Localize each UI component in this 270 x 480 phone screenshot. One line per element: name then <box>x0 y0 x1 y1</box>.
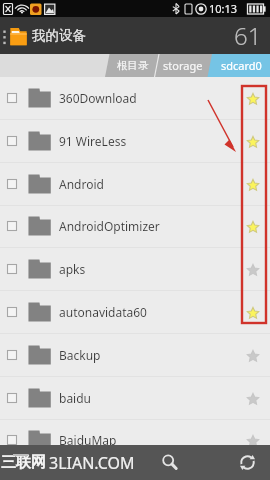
button[interactable]: Favorite <box>238 378 268 419</box>
staticText: 61 <box>234 19 262 52</box>
staticText: 我的设备 <box>32 27 86 44</box>
button[interactable]: Search <box>148 445 192 480</box>
button[interactable]: 91 WireLess <box>0 120 270 162</box>
staticText: Android <box>59 176 104 192</box>
staticText: apks <box>59 261 86 277</box>
button[interactable]: AndroidOptimizer <box>0 205 270 247</box>
staticText: AndroidOptimizer <box>59 218 160 234</box>
button[interactable]: storage <box>160 54 205 77</box>
button[interactable]: BaiduMap <box>0 419 270 445</box>
button[interactable]: apks <box>0 248 270 290</box>
button[interactable]: autonavidata60 <box>0 291 270 333</box>
staticText: 根目录 <box>117 59 149 72</box>
button[interactable]: Favorite <box>238 78 268 119</box>
button[interactable]: sdcard0 <box>212 54 270 77</box>
staticText: Backup <box>59 347 101 363</box>
button[interactable]: Favorite <box>238 292 268 333</box>
staticText: baidu <box>59 390 92 406</box>
button[interactable]: Backup <box>0 334 270 376</box>
staticText: autonavidata60 <box>59 304 147 320</box>
staticText: 91 WireLess <box>59 133 127 149</box>
staticText: sdcard0 <box>221 58 262 73</box>
button[interactable]: 360Download <box>0 77 270 119</box>
button[interactable]: More options <box>0 17 10 54</box>
staticText: 3LIAN.COM <box>49 452 135 474</box>
staticText: 360Download <box>59 90 137 106</box>
button[interactable]: Favorite <box>238 164 268 205</box>
button[interactable]: Android <box>0 163 270 205</box>
staticText: 三联网 <box>1 453 46 472</box>
button[interactable]: Favorite <box>238 249 268 290</box>
button[interactable]: 根目录 <box>114 54 152 77</box>
staticText: 10:13 <box>209 1 238 16</box>
button[interactable]: baidu <box>0 377 270 419</box>
button[interactable]: Favorite <box>238 121 268 162</box>
button[interactable]: Favorite <box>238 335 268 376</box>
button[interactable]: Favorite <box>238 420 268 445</box>
staticText: BaiduMap <box>59 432 117 445</box>
button[interactable]: Favorite <box>238 206 268 247</box>
button[interactable]: Refresh <box>225 445 269 480</box>
staticText: storage <box>163 58 203 73</box>
